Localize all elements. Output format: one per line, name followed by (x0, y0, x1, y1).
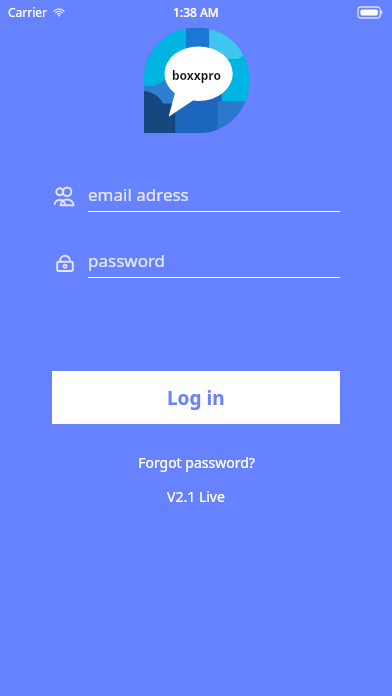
staticText: password (88, 249, 166, 272)
button[interactable]: Log in (52, 371, 340, 424)
staticText: Forgot password? (138, 453, 255, 472)
staticText: V2.1 Live (167, 487, 225, 506)
staticText: boxxpro (172, 67, 221, 83)
staticText: email adress (88, 183, 189, 206)
other: Password (52, 250, 78, 276)
button[interactable]: Forgot password? (128, 450, 265, 475)
staticText: 1:38 AM (173, 4, 219, 20)
other: Email address (52, 184, 78, 210)
staticText: Log in (167, 385, 225, 411)
button[interactable]: Password (52, 246, 340, 280)
staticText: Carrier (8, 4, 48, 20)
button[interactable]: Email address (52, 180, 340, 214)
